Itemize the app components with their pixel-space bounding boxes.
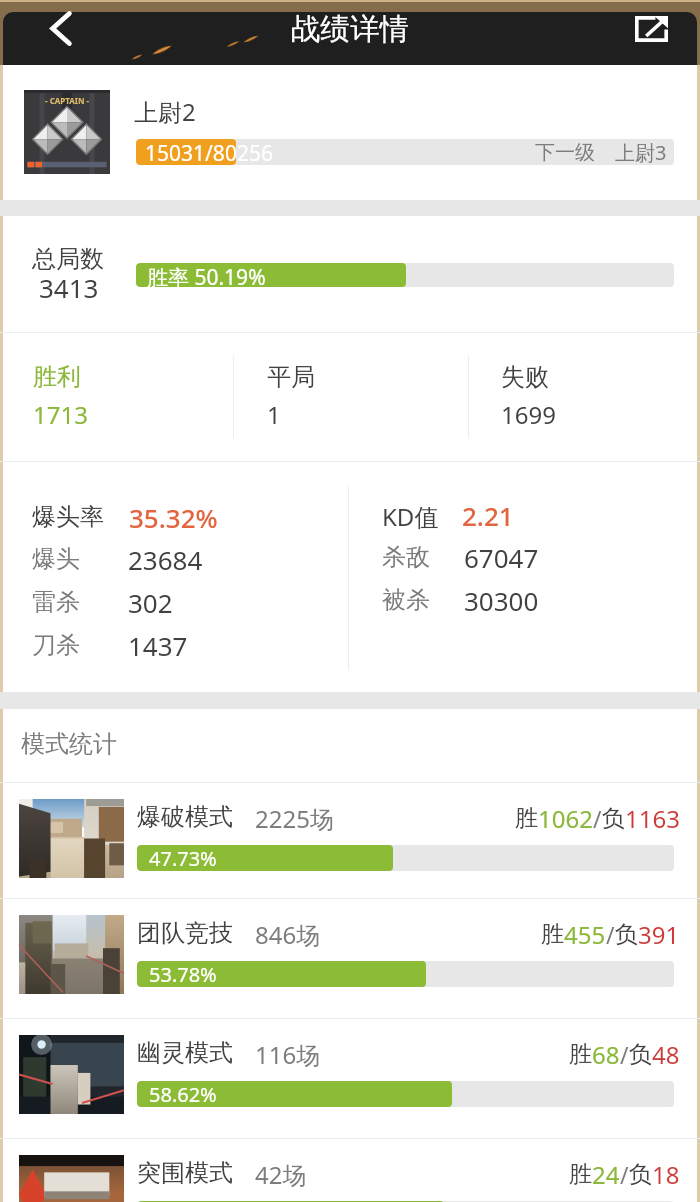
staticText: 48 <box>652 1038 680 1071</box>
staticText: 负 <box>629 1160 652 1189</box>
staticText: / <box>593 803 602 834</box>
staticText: 负 <box>602 804 625 833</box>
staticText: 模式统计 <box>21 729 117 759</box>
staticText: 18 <box>652 1158 680 1191</box>
staticText: 846场 <box>255 918 321 951</box>
staticText: 雷杀 <box>32 587 80 617</box>
staticText: 302 <box>128 585 173 620</box>
staticText: 23684 <box>128 542 203 577</box>
staticText: 391 <box>638 918 680 951</box>
staticText: 幽灵模式 <box>137 1038 233 1068</box>
staticText: 胜 <box>541 920 564 949</box>
staticText: 上尉2 <box>134 95 196 128</box>
button[interactable]: 爆破模式 <box>0 783 700 902</box>
staticText: 53.78% <box>149 961 217 987</box>
staticText: 42场 <box>255 1158 307 1191</box>
staticText: 47.73% <box>149 845 217 871</box>
staticText: KD值 <box>382 500 439 533</box>
staticText: 爆头率 <box>32 502 104 532</box>
staticText: 1699 <box>501 398 556 431</box>
staticText: 胜 <box>515 804 538 833</box>
staticText: 负 <box>629 1040 652 1069</box>
staticText: - CAPTAIN - <box>45 95 90 106</box>
staticText: 胜 <box>569 1040 592 1069</box>
staticText: 刀杀 <box>32 630 80 660</box>
staticText: 24 <box>592 1158 620 1191</box>
staticText: 1713 <box>33 398 88 431</box>
button[interactable]: Back <box>0 0 110 65</box>
staticText: 被杀 <box>382 585 430 615</box>
staticText: 3413 <box>39 270 99 305</box>
staticText: 爆破模式 <box>137 802 233 832</box>
staticText: 2.21 <box>462 498 514 533</box>
staticText: / <box>620 1159 629 1190</box>
staticText: 15031/80256 <box>145 139 273 165</box>
staticText: 平局 <box>267 362 315 392</box>
staticText: 胜 <box>569 1160 592 1189</box>
staticText: 失败 <box>501 362 549 392</box>
staticText: 突围模式 <box>137 1158 233 1188</box>
staticText: 爆头 <box>32 544 80 574</box>
staticText: 67047 <box>464 540 539 575</box>
staticText: / <box>620 1039 629 1070</box>
staticText: 1062 <box>538 802 593 835</box>
staticText: 战绩详情 <box>291 12 409 48</box>
staticText: 胜率 50.19% <box>147 263 266 287</box>
staticText: 58.62% <box>149 1081 217 1107</box>
staticText: 负 <box>615 920 638 949</box>
button[interactable]: 突围模式 <box>0 1139 700 1202</box>
staticText: 总局数 <box>32 244 104 274</box>
staticText: 455 <box>564 918 606 951</box>
staticText: 30300 <box>464 583 539 618</box>
staticText: 1437 <box>128 628 188 663</box>
staticText: 下一级 <box>535 140 595 165</box>
staticText: 上尉3 <box>615 139 667 165</box>
button[interactable]: 团队竞技 <box>0 899 700 1018</box>
staticText: 2225场 <box>255 802 334 835</box>
staticText: 1163 <box>625 802 680 835</box>
button[interactable]: Share <box>590 0 700 65</box>
button[interactable]: 幽灵模式 <box>0 1019 700 1138</box>
staticText: 68 <box>592 1038 620 1071</box>
staticText: / <box>606 919 615 950</box>
staticText: 胜利 <box>33 362 81 392</box>
staticText: 杀敌 <box>382 542 430 572</box>
staticText: 1 <box>267 398 281 431</box>
staticText: 116场 <box>255 1038 321 1071</box>
staticText: 团队竞技 <box>137 918 233 948</box>
staticText: 35.32% <box>129 500 218 535</box>
